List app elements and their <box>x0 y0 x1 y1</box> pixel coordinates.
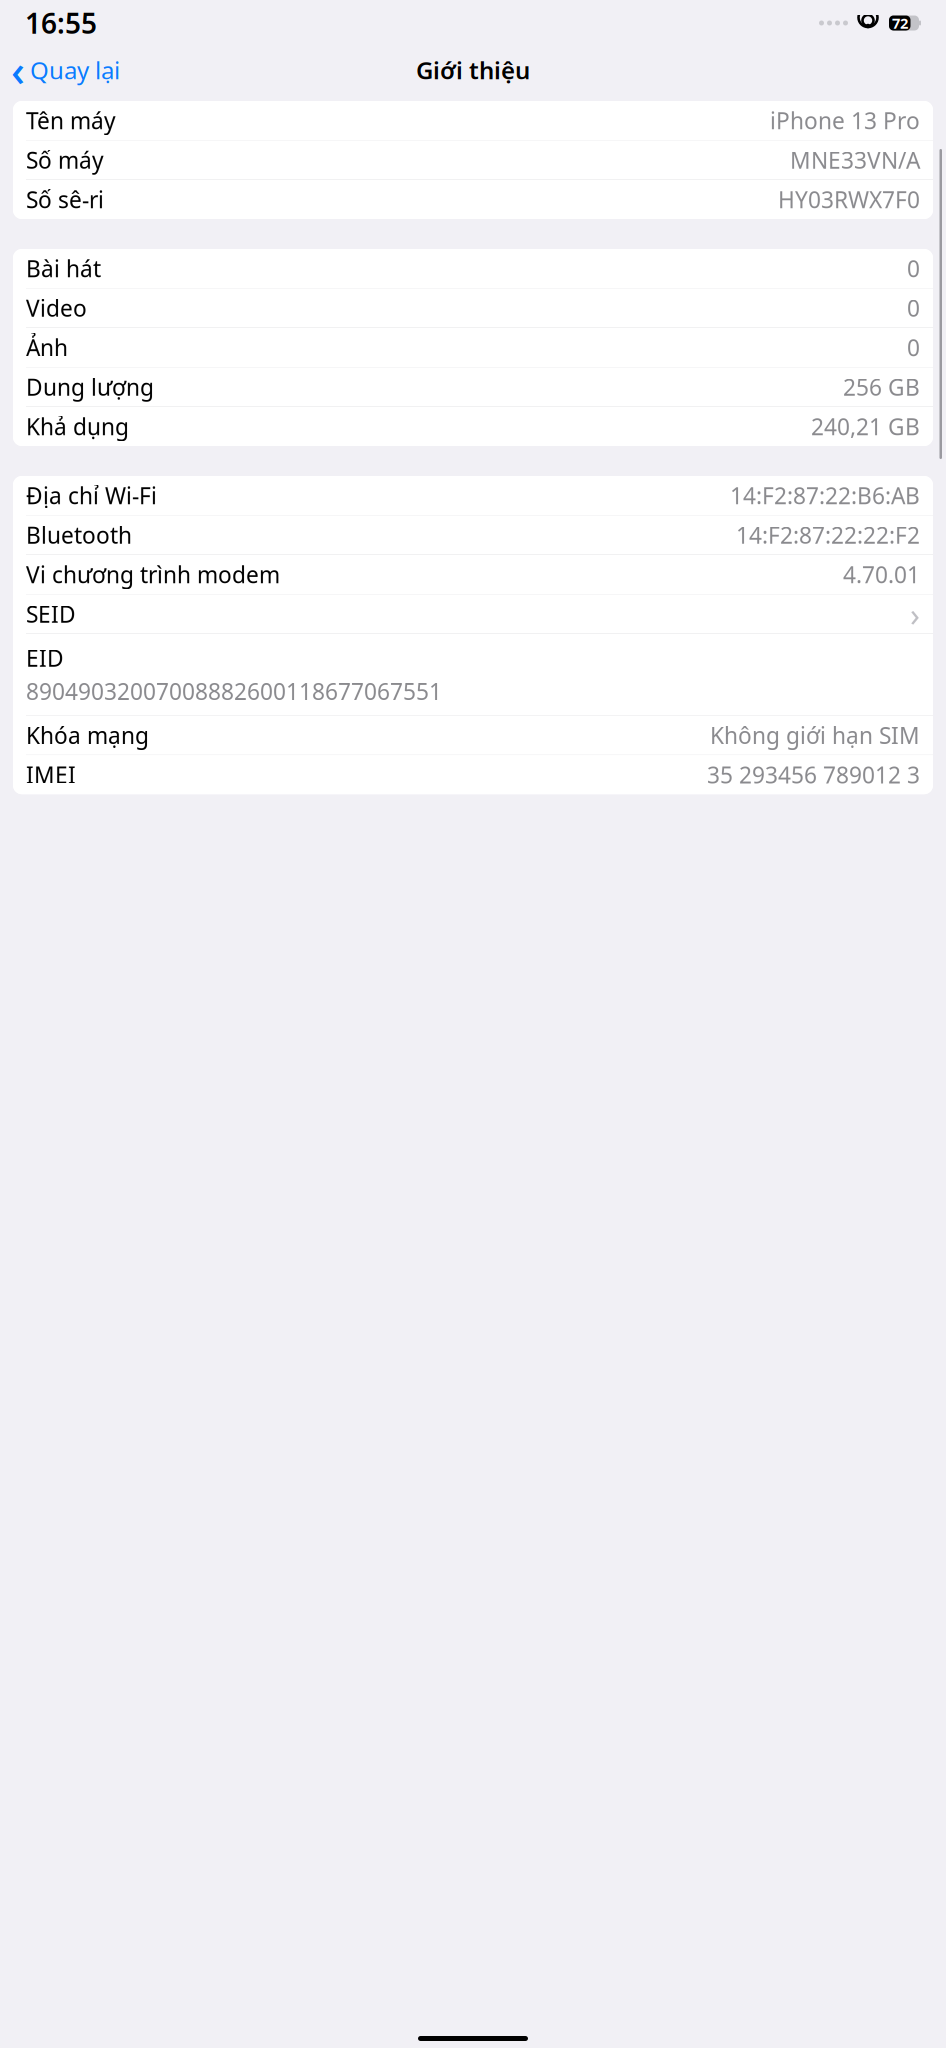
staticText: iPhone 13 Pro <box>770 105 920 135</box>
staticText: Khả dụng <box>26 411 129 441</box>
staticText: Vi chương trình modem <box>26 559 280 589</box>
button[interactable]: Địa chỉ Wi-Fi <box>13 476 933 515</box>
button[interactable]: Bluetooth <box>13 515 933 554</box>
staticText: 0 <box>907 253 920 283</box>
staticText: HY03RWX7F0 <box>778 184 920 214</box>
staticText: Ảnh <box>26 332 68 362</box>
staticText: MNE33VN/A <box>790 145 920 175</box>
button[interactable]: Tên máy <box>13 101 933 140</box>
button[interactable]: IMEI <box>13 755 933 794</box>
staticText: IMEI <box>26 760 76 790</box>
staticText: 72 <box>892 13 908 33</box>
staticText: Dung lượng <box>26 372 154 402</box>
button[interactable]: Vi chương trình modem <box>13 555 933 594</box>
staticText: Quay lại <box>30 54 120 86</box>
staticText: 35 293456 789012 3 <box>707 760 920 790</box>
staticText: › <box>910 593 920 635</box>
staticText: Video <box>26 293 87 323</box>
button[interactable]: Khóa mạng <box>13 716 933 755</box>
staticText: SEID <box>26 599 76 629</box>
button[interactable]: Số sê-ri <box>13 180 933 219</box>
button[interactable]: Dung lượng <box>13 367 933 406</box>
staticText: Giới thiệu <box>416 54 530 86</box>
staticText: Tên máy <box>26 105 116 135</box>
staticText: 16:55 <box>25 4 97 42</box>
staticText: 89049032007008882600118677067551 <box>26 676 442 706</box>
staticText: 256 GB <box>843 372 920 402</box>
staticText: 0 <box>907 332 920 362</box>
button[interactable]: ‹ <box>5 50 126 90</box>
button[interactable]: SEID <box>13 594 933 633</box>
button[interactable]: Số máy <box>13 140 933 179</box>
staticText: 240,21 GB <box>811 411 920 441</box>
staticText: Không giới hạn SIM <box>710 720 920 750</box>
button[interactable]: Video <box>13 288 933 327</box>
staticText: Khóa mạng <box>26 720 149 750</box>
staticText: Địa chỉ Wi-Fi <box>26 480 157 510</box>
staticText: 14:F2:87:22:B6:AB <box>730 480 920 510</box>
staticText: 0 <box>907 293 920 323</box>
button[interactable]: Ảnh <box>13 328 933 367</box>
staticText: Số sê-ri <box>26 184 104 214</box>
staticText: EID <box>26 643 64 673</box>
button[interactable]: Khả dụng <box>13 407 933 446</box>
staticText: Bluetooth <box>26 520 132 550</box>
staticText: 14:F2:87:22:22:F2 <box>736 520 920 550</box>
staticText: Bài hát <box>26 253 101 283</box>
button[interactable]: EID <box>13 634 933 715</box>
staticText: Số máy <box>26 145 104 175</box>
staticText: 4.70.01 <box>843 559 920 589</box>
staticText: ‹ <box>11 42 25 98</box>
button[interactable]: Bài hát <box>13 249 933 288</box>
